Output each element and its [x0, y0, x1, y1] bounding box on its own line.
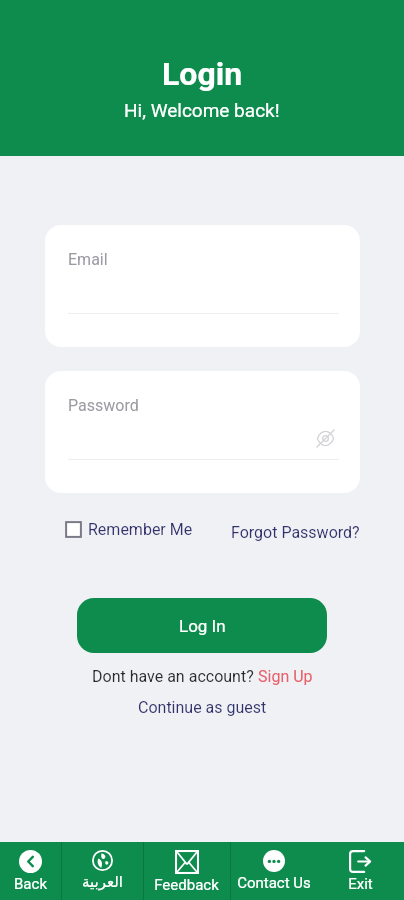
staticText: Login — [162, 55, 243, 93]
other: Language — [92, 850, 113, 871]
staticText: Feedback — [154, 876, 219, 894]
button[interactable]: Log In — [77, 598, 327, 653]
staticText: Email — [68, 250, 108, 269]
other: Feedback — [175, 850, 199, 874]
button[interactable]: Email — [45, 225, 360, 347]
button[interactable]: Forgot Password? — [231, 523, 360, 542]
button[interactable]: Show password — [316, 429, 335, 448]
staticText: Exit — [348, 875, 373, 893]
other: Exit — [349, 850, 372, 873]
button[interactable]: Contact Us — [230, 842, 317, 900]
button[interactable]: Remember Me — [65, 520, 193, 539]
button[interactable]: Continue as guest — [138, 698, 267, 717]
button[interactable]: Back — [0, 842, 61, 900]
staticText: Continue as guest — [138, 698, 267, 717]
staticText: العربية — [82, 873, 123, 890]
staticText: Contact Us — [237, 874, 311, 892]
staticText: Forgot Password? — [231, 523, 360, 542]
other: Back — [19, 850, 42, 873]
staticText: Remember Me — [88, 520, 193, 539]
button[interactable]: Exit — [317, 842, 404, 900]
other: Contact Us — [263, 850, 285, 872]
staticText: Hi, Welcome back! — [124, 99, 280, 121]
button[interactable]: Sign Up — [258, 667, 313, 686]
staticText: Password — [68, 396, 139, 415]
button[interactable]: Feedback — [143, 842, 230, 900]
button[interactable]: Language — [61, 842, 143, 900]
staticText: Log In — [179, 616, 226, 636]
staticText: Dont have an account? — [92, 667, 258, 686]
staticText: Sign Up — [258, 667, 313, 686]
staticText: Back — [14, 875, 47, 893]
button[interactable]: Password — [45, 371, 360, 493]
